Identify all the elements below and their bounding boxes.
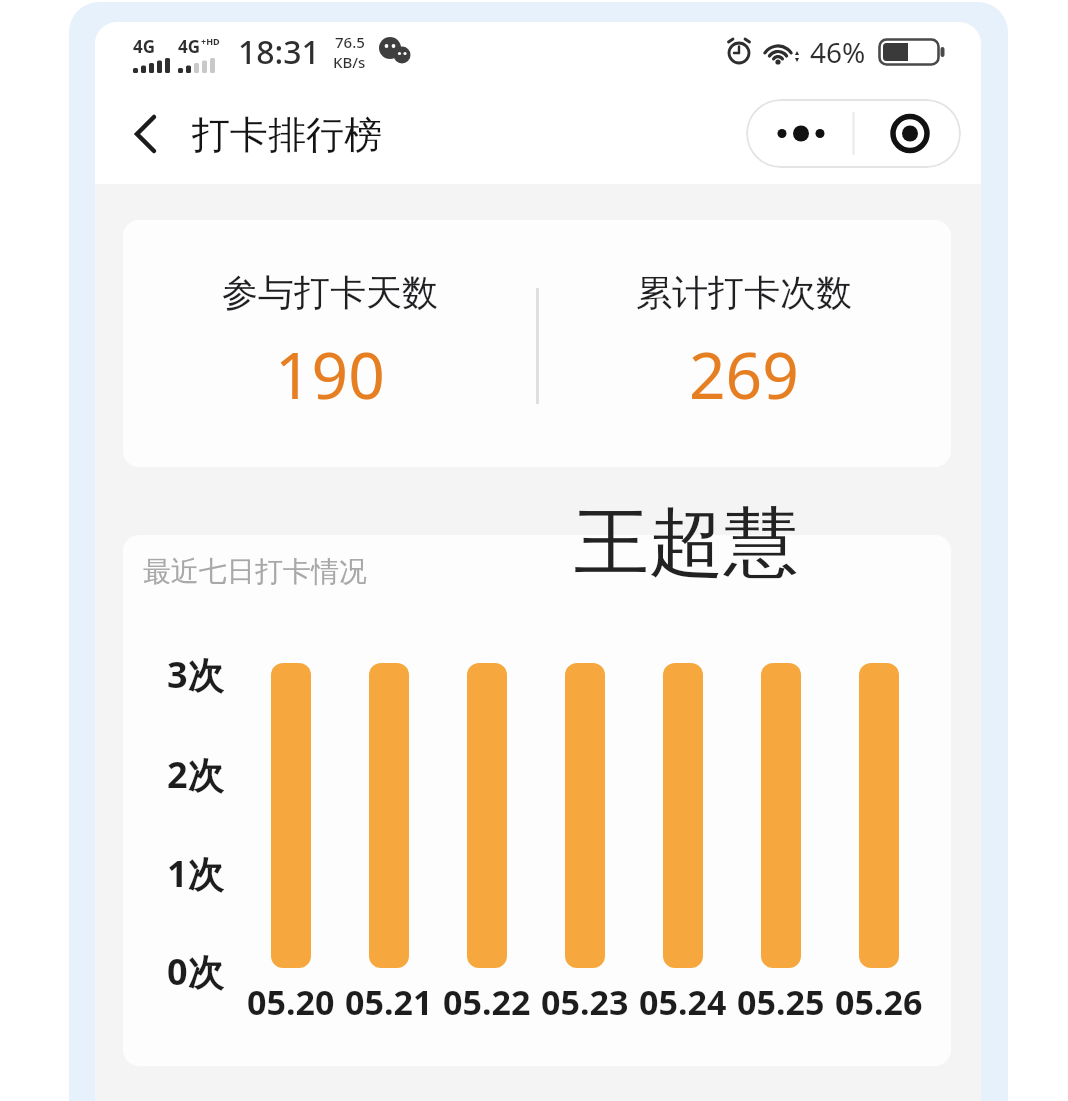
staticText: 1次 [167, 849, 224, 893]
staticText: 参与打卡天数 [222, 270, 438, 315]
staticText: KB/s [333, 52, 366, 72]
staticText: 05.21 [345, 979, 433, 1015]
staticText: 3次 [167, 650, 224, 694]
button[interactable] [123, 112, 167, 156]
staticText: 18:31 [238, 30, 320, 74]
staticText: 05.25 [737, 979, 825, 1015]
staticText: 190 [275, 331, 385, 418]
staticText: 打卡排行榜 [192, 111, 382, 155]
staticText: 累计打卡次数 [636, 270, 852, 315]
staticText: 王超慧 [574, 496, 799, 590]
staticText: 4G [133, 35, 156, 58]
button[interactable]: 参与打卡天数 [123, 220, 951, 467]
staticText: +HD [201, 35, 220, 47]
staticText: 76.5 [335, 32, 365, 52]
staticText: 05.26 [835, 979, 923, 1015]
staticText: 05.24 [639, 979, 727, 1015]
staticText: 05.23 [541, 979, 629, 1015]
staticText: 0次 [167, 947, 224, 991]
button[interactable] [746, 99, 961, 168]
staticText: 05.22 [443, 979, 531, 1015]
staticText: 05.20 [247, 979, 335, 1015]
staticText: 2次 [167, 750, 224, 794]
staticText: 4G [178, 35, 201, 58]
button[interactable]: 最近七日打卡情况 [123, 535, 951, 1066]
staticText: 最近七日打卡情况 [143, 554, 367, 589]
staticText: 269 [689, 331, 799, 418]
staticText: 46% [810, 33, 866, 71]
